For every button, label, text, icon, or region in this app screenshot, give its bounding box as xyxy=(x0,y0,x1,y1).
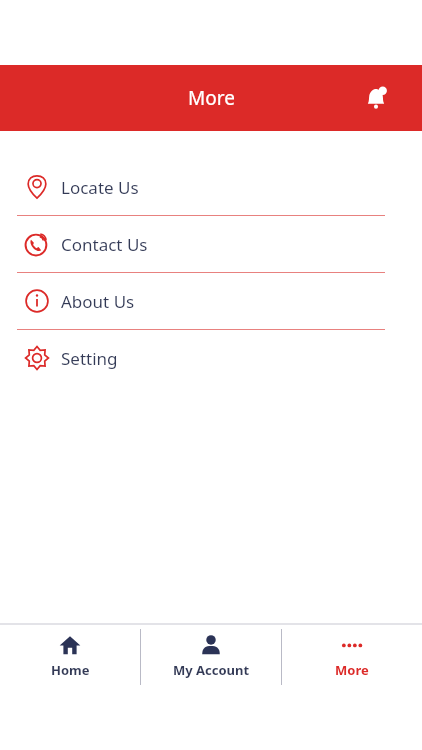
staticText: About Us xyxy=(61,290,135,313)
staticText: More xyxy=(335,661,369,679)
button[interactable]: About Us xyxy=(0,273,422,329)
button[interactable]: My Account xyxy=(141,625,281,679)
button[interactable]: Contact Us xyxy=(0,216,422,272)
button[interactable]: More xyxy=(282,625,422,679)
staticText: My Account xyxy=(173,661,250,679)
button[interactable]: Notifications xyxy=(356,78,396,118)
button[interactable]: Locate Us xyxy=(0,159,422,215)
staticText: More xyxy=(188,85,235,111)
staticText: Locate Us xyxy=(61,176,139,199)
staticText: Contact Us xyxy=(61,233,148,256)
staticText: Home xyxy=(51,661,90,679)
button[interactable]: Home xyxy=(0,625,140,679)
button[interactable]: Setting xyxy=(0,330,422,386)
staticText: Setting xyxy=(61,347,118,370)
